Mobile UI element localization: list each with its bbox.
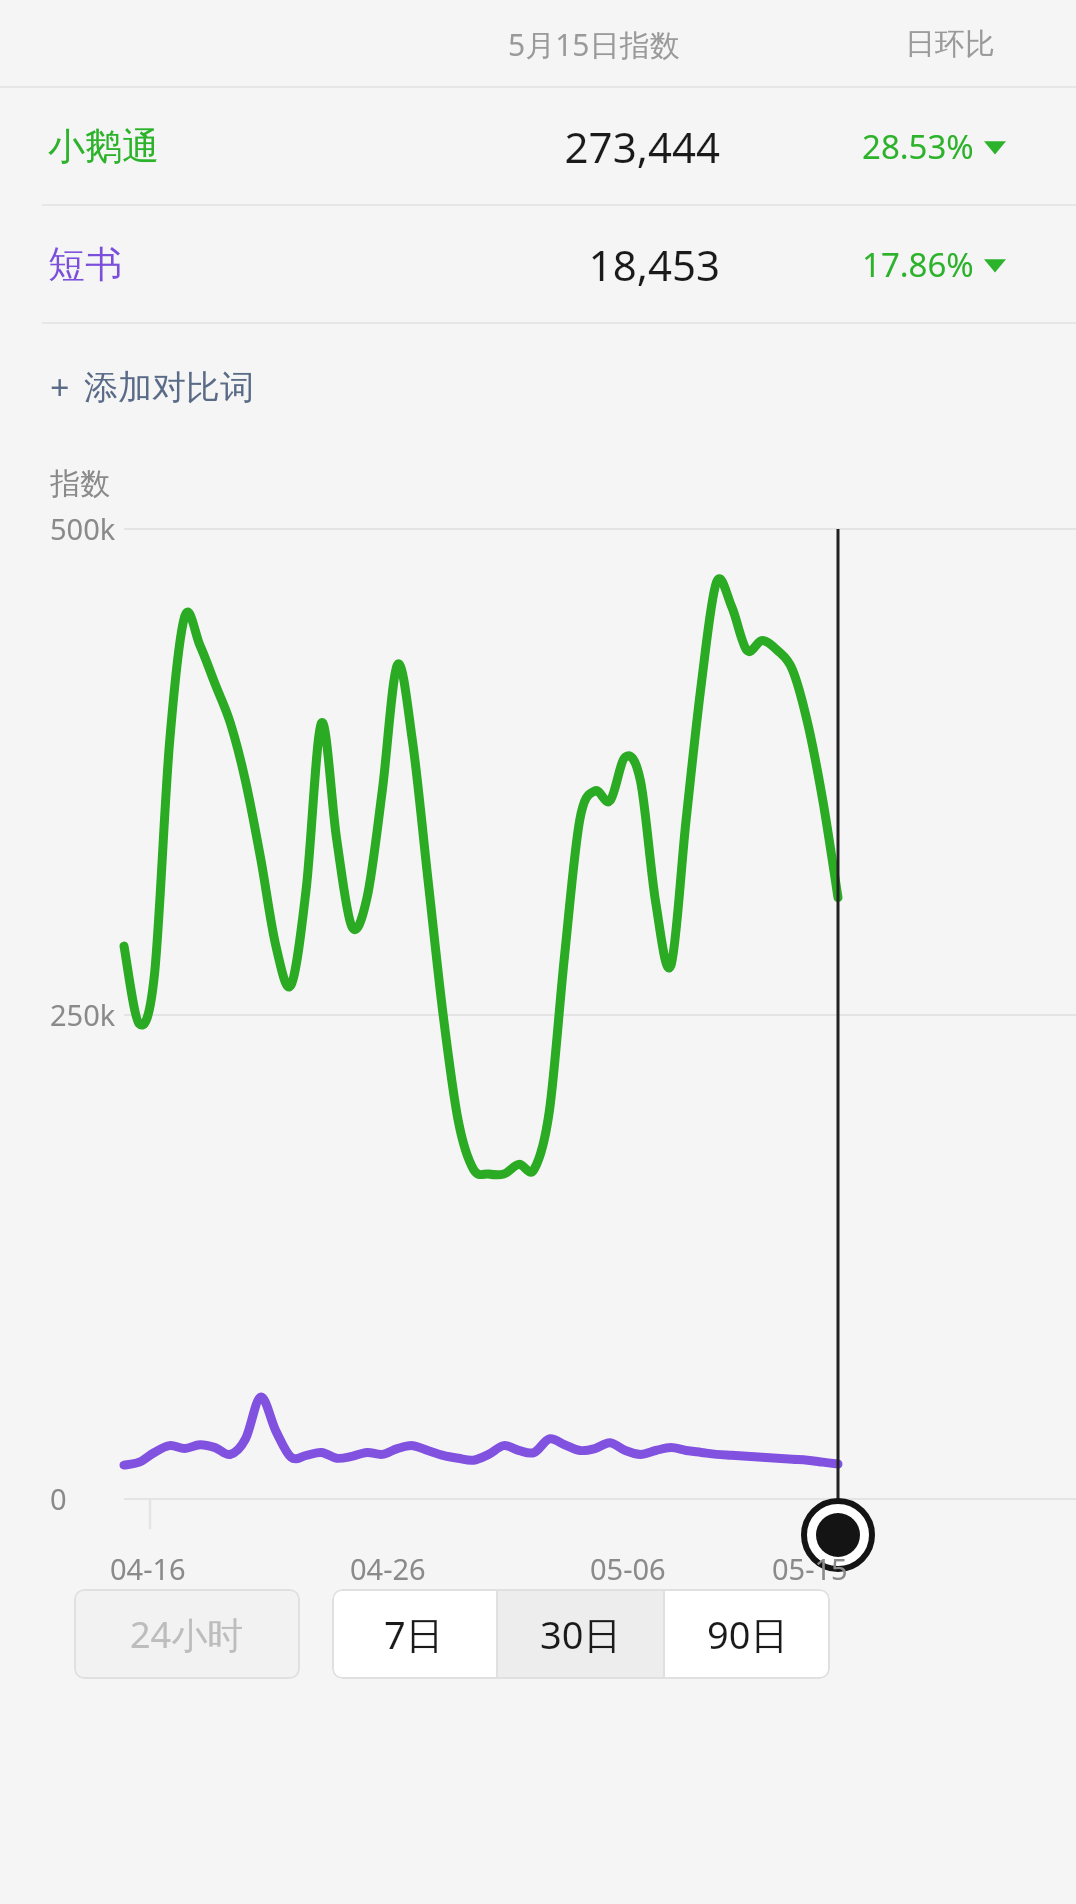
button[interactable]: 24小时 [74,1589,300,1679]
staticText: 小鹅通 [48,123,159,170]
staticText: 05-15 [772,1549,848,1588]
button[interactable]: 30日 [498,1589,663,1679]
staticText: 日环比 [905,25,995,63]
staticText: 5月15日指数 [508,24,680,65]
staticText: 添加对比词 [84,366,254,409]
staticText: + [50,364,70,410]
button[interactable]: 短书 [0,206,1076,322]
staticText: 90日 [707,1608,789,1660]
staticText: 500k [50,509,116,548]
button[interactable]: 小鹅通 [0,88,1076,204]
staticText: 28.53% [862,124,974,169]
staticText: 24小时 [130,1610,244,1659]
staticText: 250k [50,995,116,1034]
button[interactable]: + [48,354,256,420]
staticText: 30日 [540,1608,622,1660]
staticText: 05-06 [590,1549,666,1588]
staticText: 273,444 [380,118,720,175]
staticText: 04-26 [350,1549,426,1588]
staticText: 18,453 [380,236,720,293]
staticText: 指数 [50,465,110,503]
staticText: 7日 [384,1608,444,1660]
staticText: 短书 [48,241,122,288]
staticText: 17.86% [862,242,974,287]
staticText: 0 [50,1479,67,1518]
button[interactable]: 7日 [332,1589,496,1679]
staticText: 04-16 [110,1549,186,1588]
button[interactable]: 90日 [665,1589,830,1679]
